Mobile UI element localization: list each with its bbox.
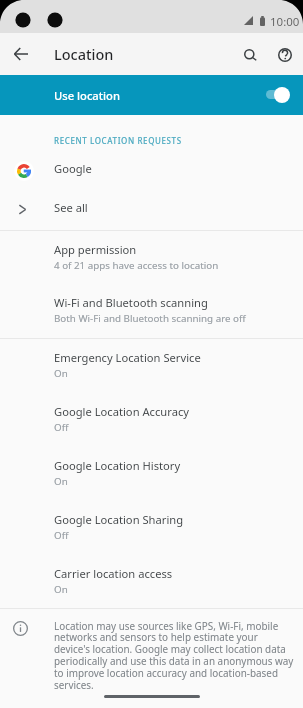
button[interactable]: Google Location Sharing bbox=[0, 501, 303, 555]
staticText: On bbox=[54, 583, 68, 596]
staticText: 10:00 bbox=[270, 14, 300, 30]
staticText: On bbox=[54, 475, 68, 488]
staticText: Google Location Accuracy bbox=[54, 404, 190, 419]
staticText: Carrier location access bbox=[54, 566, 173, 581]
staticText: Use location bbox=[54, 88, 120, 103]
staticText: Location may use sources like GPS, Wi-Fi… bbox=[54, 619, 294, 692]
staticText: Google Location Sharing bbox=[54, 512, 184, 527]
button[interactable]: Wi-Fi and Bluetooth scanning bbox=[0, 284, 303, 338]
staticText: App permission bbox=[54, 242, 137, 257]
staticText: Off bbox=[54, 529, 69, 542]
staticText: Wi-Fi and Bluetooth scanning bbox=[54, 295, 208, 310]
button[interactable]: App permission bbox=[0, 231, 303, 284]
staticText: RECENT LOCATION REQUESTS bbox=[54, 135, 182, 146]
button[interactable]: Help bbox=[269, 38, 301, 70]
staticText: Emergency Location Service bbox=[54, 350, 201, 365]
button[interactable]: See all bbox=[0, 191, 303, 230]
staticText: 4 of 21 apps have access to location bbox=[54, 259, 219, 272]
button[interactable]: Google Location History bbox=[0, 447, 303, 501]
button[interactable]: Carrier location access bbox=[0, 555, 303, 608]
staticText: Location bbox=[54, 44, 114, 64]
staticText: Google Location History bbox=[54, 458, 181, 473]
staticText: Off bbox=[54, 421, 69, 434]
button[interactable]: Search bbox=[234, 38, 266, 70]
staticText: On bbox=[54, 367, 68, 380]
button[interactable]: Google bbox=[0, 151, 303, 191]
button[interactable]: Back bbox=[5, 38, 37, 70]
button[interactable]: Emergency Location Service bbox=[0, 339, 303, 393]
button[interactable]: Google Location Accuracy bbox=[0, 393, 303, 447]
staticText: See all bbox=[54, 200, 88, 215]
button[interactable]: Use location bbox=[0, 75, 303, 115]
staticText: Both Wi-Fi and Bluetooth scanning are of… bbox=[54, 312, 246, 325]
staticText: Google bbox=[54, 161, 92, 176]
